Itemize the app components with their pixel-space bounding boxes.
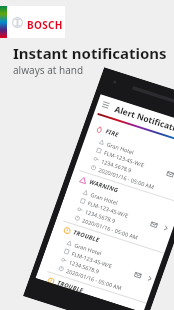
staticText: always at hand: [13, 63, 84, 77]
button[interactable]: FIRE: [74, 119, 174, 204]
staticText: Gran Hotel: [90, 191, 119, 206]
button[interactable]: TROUBLE: [30, 270, 149, 310]
button[interactable]: WARNING: [57, 169, 174, 254]
staticText: FLM-123-45-W/E: [103, 149, 145, 168]
staticText: TROUBLE: [72, 228, 100, 244]
button[interactable]: Details: [162, 224, 170, 232]
button[interactable]: Menu: [101, 100, 111, 110]
staticText: FIRE: [104, 127, 120, 139]
staticText: 1234.5678.9: [100, 157, 133, 174]
button[interactable]: Mark as read: [166, 170, 174, 179]
staticText: Gran Hotel: [106, 140, 135, 155]
staticText: 2020/01/16 - 05:00 AM: [98, 166, 155, 190]
staticText: TROUBLE: [56, 279, 84, 295]
staticText: FLM-123-45-W/E: [87, 199, 129, 219]
button[interactable]: Mark as read: [133, 271, 142, 280]
button[interactable]: TROUBLE: [41, 220, 165, 305]
staticText: Alert Notifications: [113, 103, 174, 139]
staticText: 1234.5678.9: [53, 309, 85, 310]
staticText: 1234.5678.9: [68, 258, 101, 275]
staticText: WARNING: [88, 178, 119, 195]
button[interactable]: Details: [146, 275, 154, 282]
staticText: Gran Hotel: [57, 292, 86, 307]
button[interactable]: Mark as read: [150, 220, 158, 229]
staticText: FLM-123-45-W/E: [71, 250, 113, 269]
staticText: Instant notifications: [13, 43, 167, 63]
staticText: FLM-123-45-W/E: [55, 300, 97, 310]
staticText: 1234.5678.9: [84, 208, 117, 224]
staticText: Gran Hotel: [74, 241, 102, 256]
staticText: 2020/01/16 - 05:00 AM: [65, 267, 123, 291]
staticText: BOSCH: [27, 18, 63, 32]
staticText: 2020/01/16 - 05:00 AM: [82, 216, 139, 241]
